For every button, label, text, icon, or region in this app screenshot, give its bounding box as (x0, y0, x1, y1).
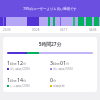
staticText: 浅い睡眠 (55%) (53, 67, 73, 71)
staticText: 1 (7, 76, 10, 83)
staticText: 04:06 (89, 28, 97, 32)
button[interactable]: 1 (7, 76, 50, 88)
staticText: 3 (50, 59, 53, 66)
staticText: 02:17 (60, 28, 68, 32)
staticText: 覚醒状態 (53, 84, 65, 88)
staticText: 1 (7, 59, 10, 66)
staticText: 0 (50, 76, 53, 83)
staticText: 分 (23, 62, 27, 66)
button[interactable]: 5時間27分 (3, 37, 97, 92)
staticText: 時間 (10, 62, 17, 66)
staticText: 23:39 (3, 28, 11, 32)
staticText: 分 (53, 79, 57, 83)
staticText: 分 (23, 79, 27, 83)
staticText: 00:28 (32, 28, 40, 32)
staticText: 時間 (10, 79, 17, 83)
button[interactable]: 3 (50, 59, 93, 71)
staticText: 12 (17, 59, 23, 66)
staticText: 01 (60, 59, 66, 66)
button[interactable]: 1 (7, 59, 50, 71)
staticText: 分 (66, 62, 70, 66)
staticText: 深い睡眠 (22%) (10, 67, 30, 71)
button[interactable]: 0 (50, 76, 93, 88)
staticText: 79%のユーザーよりも良い睡眠です (23, 6, 77, 11)
staticText: 5時間27分 (7, 41, 93, 48)
staticText: 時間 (53, 62, 60, 66)
staticText: 14 (17, 76, 23, 83)
staticText: レム睡眠 (23%) (10, 84, 30, 88)
